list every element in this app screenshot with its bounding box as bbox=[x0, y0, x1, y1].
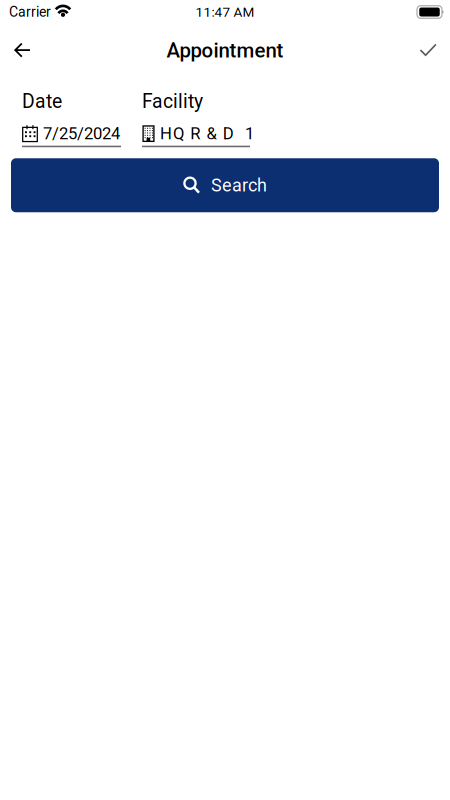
staticText: Appointment bbox=[166, 38, 283, 62]
button[interactable]: HQ R & D 1 bbox=[142, 126, 254, 147]
staticText: Facility bbox=[142, 90, 203, 113]
staticText: Search bbox=[211, 175, 267, 196]
button[interactable]: Back bbox=[3, 24, 48, 71]
staticText: 7/25/2024 bbox=[43, 124, 120, 143]
button[interactable]: Confirm bbox=[402, 24, 447, 71]
button[interactable]: 7/25/2024 bbox=[22, 126, 121, 147]
staticText: 11:47 AM bbox=[195, 4, 254, 20]
button[interactable]: Search bbox=[11, 158, 439, 212]
staticText: HQ R & D 1 bbox=[160, 124, 254, 143]
staticText: Date bbox=[22, 90, 62, 113]
staticText: Carrier bbox=[9, 4, 51, 20]
